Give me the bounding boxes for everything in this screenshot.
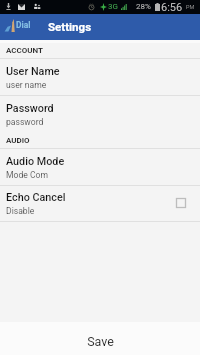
button[interactable]: Dial home (3, 20, 30, 33)
staticText: Settings (48, 20, 92, 33)
button[interactable]: Toggle Echo Cancel (176, 198, 186, 208)
staticText: 3G (108, 2, 118, 11)
button[interactable]: User Name (0, 59, 200, 95)
staticText: 6:56 (161, 1, 183, 14)
staticText: Save (87, 334, 114, 349)
staticText: User Name (6, 65, 60, 78)
button[interactable]: Save (0, 322, 200, 355)
staticText: Audio Mode (6, 155, 65, 168)
staticText: Mode Com (6, 170, 48, 180)
staticText: ACCOUNT (6, 46, 44, 55)
staticText: PM (186, 4, 195, 10)
staticText: Dial (16, 20, 31, 30)
staticText: user name (6, 80, 47, 90)
button[interactable]: Echo Cancel (0, 186, 200, 221)
staticText: Password (6, 102, 54, 115)
button[interactable]: Audio Mode (0, 149, 200, 185)
staticText: 28% (136, 2, 151, 11)
staticText: Disable (6, 206, 35, 216)
button[interactable]: Password (0, 96, 200, 132)
staticText: password (6, 117, 44, 127)
staticText: AUDIO (6, 136, 30, 145)
staticText: Echo Cancel (6, 191, 66, 204)
